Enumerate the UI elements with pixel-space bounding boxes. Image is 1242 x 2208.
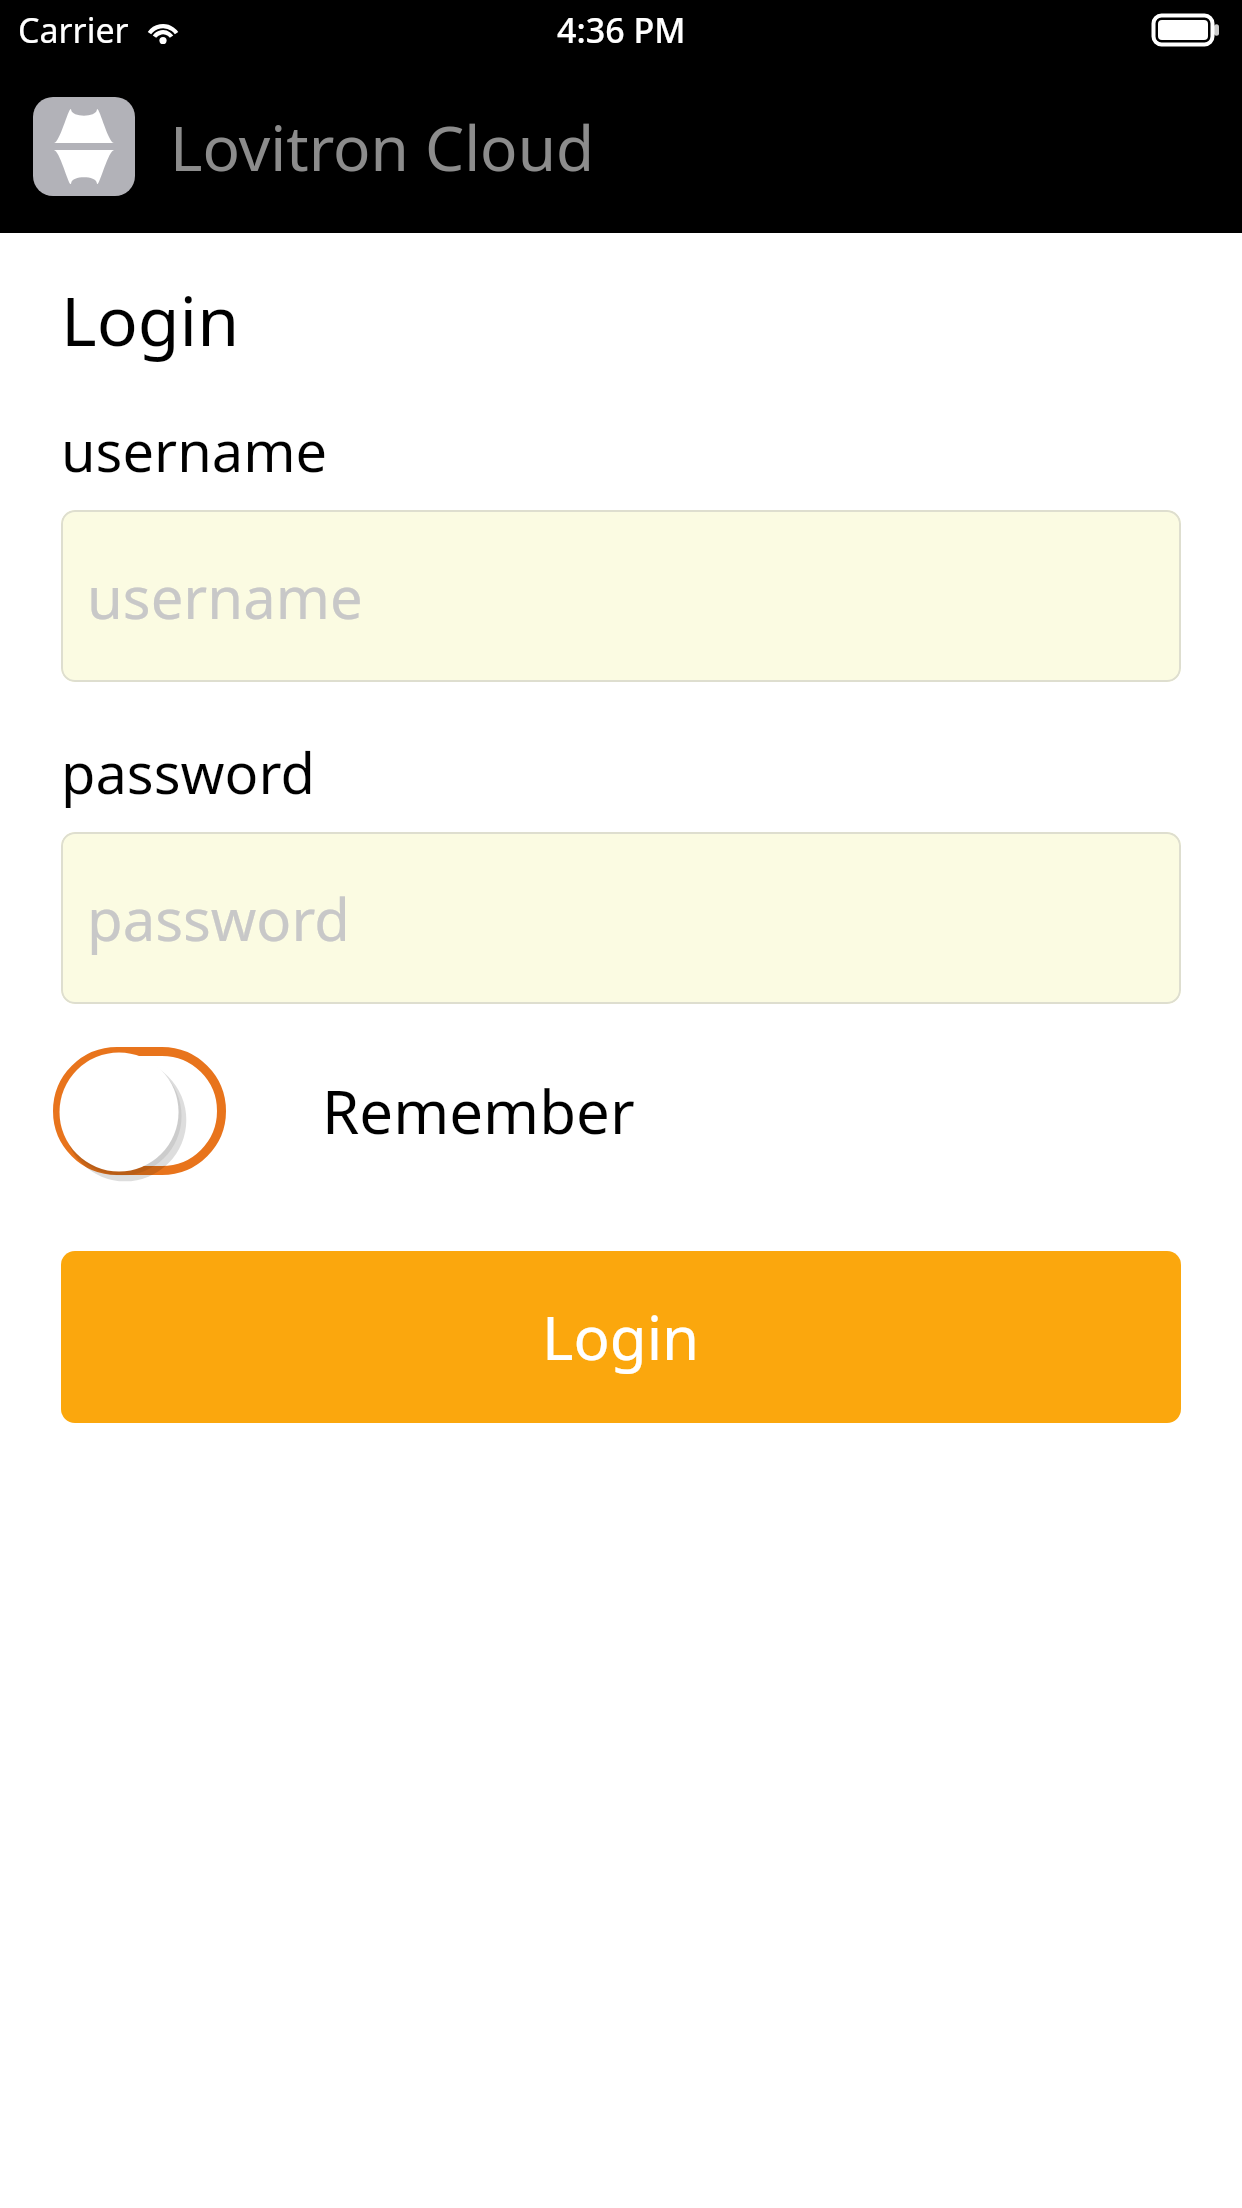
staticText: username: [87, 557, 363, 636]
button[interactable]: Login: [61, 1251, 1181, 1423]
staticText: password: [61, 734, 315, 810]
button[interactable]: Remember me toggle, off: [53, 1047, 226, 1175]
staticText: Login: [61, 273, 240, 366]
button[interactable]: password: [61, 832, 1181, 1004]
staticText: Login: [542, 1296, 700, 1378]
button[interactable]: Lovitron Cloud logo: [33, 97, 135, 196]
staticText: Carrier: [18, 7, 129, 53]
staticText: username: [61, 412, 328, 488]
staticText: Remember: [322, 1070, 635, 1152]
staticText: password: [87, 879, 350, 958]
staticText: Lovitron Cloud: [170, 105, 595, 189]
staticText: 4:36 PM: [557, 7, 686, 53]
button[interactable]: username: [61, 510, 1181, 682]
